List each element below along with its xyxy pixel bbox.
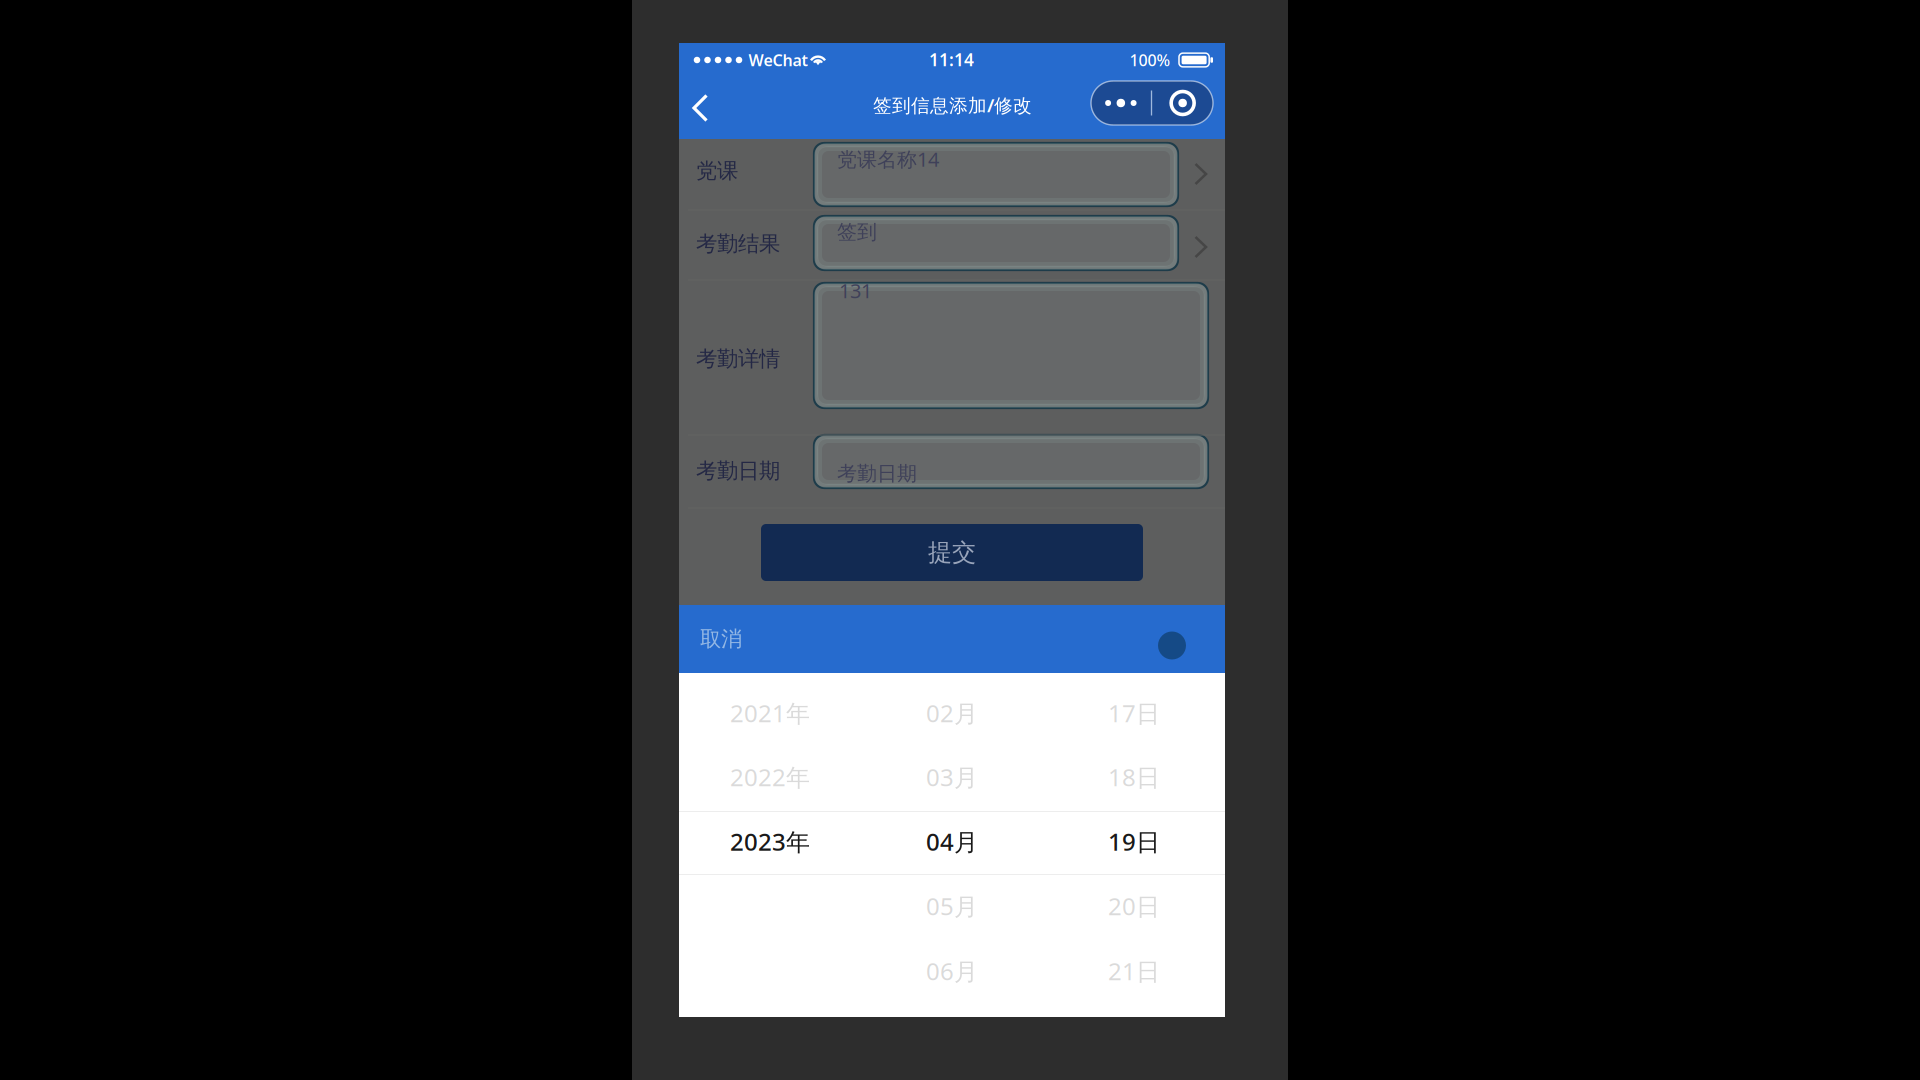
staticText: 03月 bbox=[926, 761, 978, 793]
staticText: 2023年 bbox=[730, 826, 810, 857]
button[interactable]: 党课 bbox=[814, 143, 1178, 206]
button[interactable]: 考勤详情 bbox=[814, 283, 1208, 408]
staticText: 06月 bbox=[926, 955, 978, 987]
staticText: 考勤详情 bbox=[696, 346, 780, 372]
button[interactable]: Close mini program bbox=[1152, 81, 1213, 125]
button[interactable]: 考勤结果 bbox=[814, 216, 1178, 270]
button[interactable]: Back bbox=[677, 82, 723, 134]
button[interactable]: Confirm bbox=[1149, 622, 1195, 668]
staticText: 2021年 bbox=[730, 697, 810, 729]
staticText: 21日 bbox=[1108, 955, 1160, 987]
staticText: 18日 bbox=[1108, 761, 1160, 793]
staticText: 04月 bbox=[926, 826, 978, 857]
staticText: 20日 bbox=[1108, 890, 1160, 922]
staticText: 签到 bbox=[837, 220, 877, 244]
staticText: 17日 bbox=[1108, 697, 1160, 729]
button[interactable]: 考勤日期 bbox=[814, 435, 1208, 488]
staticText: 提交 bbox=[928, 538, 976, 567]
button[interactable]: More bbox=[1091, 81, 1151, 125]
staticText: 05月 bbox=[926, 890, 978, 922]
staticText: 取消 bbox=[700, 626, 742, 652]
staticText: 2022年 bbox=[730, 761, 810, 793]
staticText: 签到信息添加/修改 bbox=[873, 93, 1032, 117]
staticText: 考勤日期 bbox=[696, 458, 780, 484]
staticText: 考勤日期 bbox=[837, 461, 917, 486]
staticText: 11:14 bbox=[929, 48, 974, 71]
button[interactable]: 提交 bbox=[761, 524, 1143, 581]
button[interactable]: Choose 党课 bbox=[1184, 152, 1218, 196]
button[interactable]: Choose 考勤结果 bbox=[1184, 225, 1218, 269]
button[interactable]: 取消 bbox=[700, 613, 772, 665]
staticText: 党课名称14 bbox=[837, 146, 939, 172]
staticText: WeChat bbox=[748, 49, 807, 71]
staticText: 100% bbox=[1129, 49, 1170, 71]
staticText: 考勤结果 bbox=[696, 231, 780, 257]
staticText: 19日 bbox=[1108, 826, 1160, 857]
staticText: 131 bbox=[839, 277, 872, 304]
staticText: 02月 bbox=[926, 697, 978, 729]
staticText: 党课 bbox=[696, 158, 738, 184]
